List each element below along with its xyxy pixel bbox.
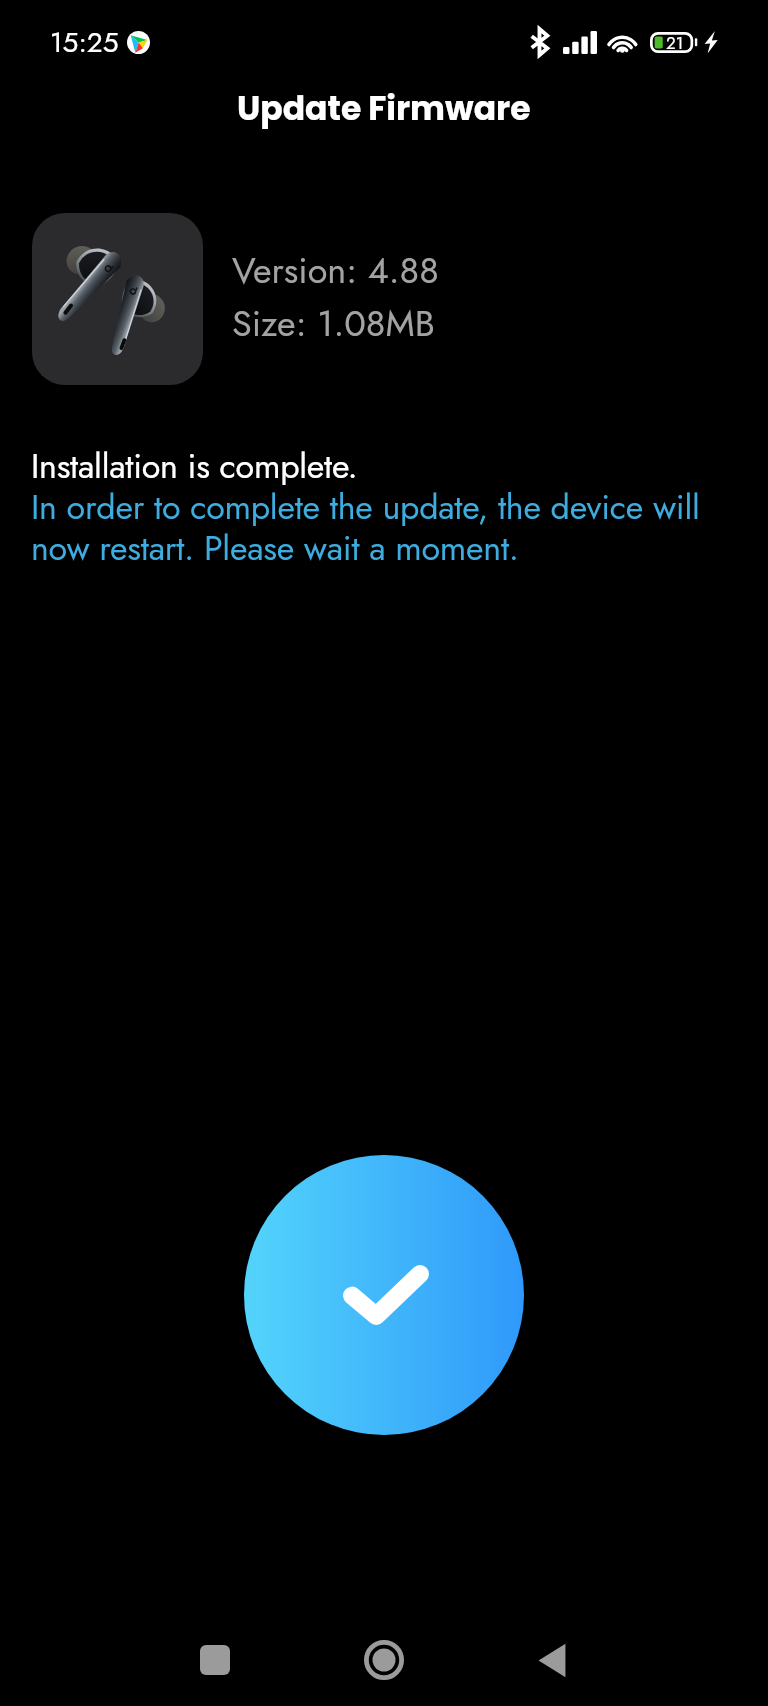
staticText: Size: 1.08MB: [232, 297, 435, 349]
staticText: Version: 4.88: [232, 244, 439, 296]
staticText: Update Firmware: [237, 85, 531, 131]
button[interactable]: Installation complete: [244, 1155, 524, 1435]
button[interactable]: Back: [468, 1614, 636, 1706]
staticText: 15:25: [50, 22, 119, 62]
button[interactable]: Recents: [131, 1614, 299, 1706]
button[interactable]: Home: [300, 1614, 468, 1706]
staticText: Installation is complete. In order to co…: [31, 442, 731, 573]
staticText: 21: [666, 31, 684, 52]
